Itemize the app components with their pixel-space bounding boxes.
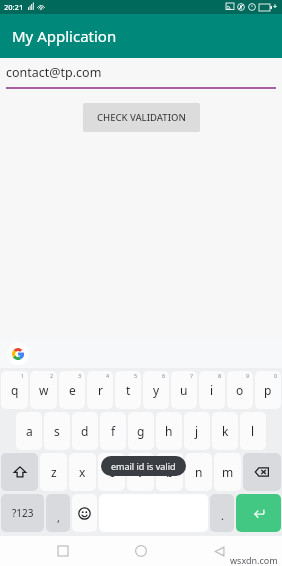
staticText: 3 xyxy=(78,372,82,379)
button[interactable]: b xyxy=(156,453,183,491)
button[interactable]: z xyxy=(40,453,67,491)
staticText: f xyxy=(111,423,116,439)
button[interactable]: v xyxy=(127,453,154,491)
button[interactable]: , xyxy=(46,494,70,532)
button[interactable]: Home xyxy=(126,536,156,566)
button[interactable]: c xyxy=(98,453,125,491)
staticText: g xyxy=(137,423,145,439)
button[interactable]: ?123 xyxy=(1,494,44,532)
staticText: v xyxy=(137,464,144,480)
staticText: h xyxy=(165,423,173,439)
button[interactable]: 6 xyxy=(143,371,169,409)
button[interactable]: x xyxy=(69,453,96,491)
button[interactable]: f xyxy=(100,412,126,450)
button[interactable]: s xyxy=(44,412,70,450)
staticText: t xyxy=(126,382,131,398)
staticText: p xyxy=(264,382,272,398)
button[interactable]: 5 xyxy=(115,371,141,409)
staticText: . xyxy=(221,508,224,523)
button[interactable]: contact@tp.com xyxy=(0,62,282,89)
button[interactable]: n xyxy=(185,453,212,491)
staticText: n xyxy=(195,464,203,480)
staticText: wsxdn.com xyxy=(230,554,278,566)
button[interactable]: Backspace xyxy=(243,453,281,491)
staticText: My Application xyxy=(12,26,117,46)
staticText: b xyxy=(166,464,174,480)
button[interactable]: 7 xyxy=(171,371,197,409)
staticText: 1 xyxy=(21,372,25,379)
button[interactable]: Shift xyxy=(1,453,38,491)
staticText: r xyxy=(98,382,103,398)
button[interactable]: 4 xyxy=(87,371,113,409)
button[interactable]: l xyxy=(240,412,266,450)
button[interactable]: Back xyxy=(204,536,234,566)
button[interactable]: d xyxy=(72,412,98,450)
staticText: 7 xyxy=(190,372,194,379)
button[interactable]: m xyxy=(214,453,241,491)
staticText: 6 xyxy=(162,372,166,379)
staticText: 5 xyxy=(134,372,138,379)
staticText: 20:21 xyxy=(4,2,24,12)
staticText: o xyxy=(236,382,244,398)
staticText: w xyxy=(39,382,49,398)
staticText: u xyxy=(180,382,188,398)
staticText: d xyxy=(81,423,89,439)
button[interactable]: . xyxy=(210,494,234,532)
button[interactable]: 0 xyxy=(255,371,281,409)
staticText: contact@tp.com xyxy=(6,64,102,81)
staticText: l xyxy=(251,423,255,439)
button[interactable]: Emoji xyxy=(72,494,97,532)
staticText: 4 xyxy=(106,372,110,379)
staticText: 9 xyxy=(246,372,250,379)
staticText: 2 xyxy=(50,372,54,379)
staticText: s xyxy=(54,423,60,439)
button[interactable]: 8 xyxy=(199,371,225,409)
staticText: ?123 xyxy=(12,506,34,520)
staticText: a xyxy=(26,423,33,439)
button[interactable]: g xyxy=(128,412,154,450)
button[interactable]: Enter xyxy=(236,494,281,532)
button[interactable]: k xyxy=(212,412,238,450)
staticText: q xyxy=(11,382,19,398)
staticText: + xyxy=(273,2,278,12)
staticText: y xyxy=(153,382,160,398)
staticText: CHECK VALIDATION xyxy=(97,111,186,124)
button[interactable]: 2 xyxy=(30,371,57,409)
staticText: 8 xyxy=(218,372,222,379)
button[interactable]: Google xyxy=(7,343,29,365)
button[interactable]: 1 xyxy=(1,371,28,409)
staticText: c xyxy=(109,464,115,480)
button[interactable]: Recents xyxy=(48,536,78,566)
staticText: x xyxy=(79,464,86,480)
staticText: m xyxy=(222,464,234,480)
button[interactable]: a xyxy=(16,412,42,450)
button[interactable]: j xyxy=(184,412,210,450)
staticText: i xyxy=(210,382,214,398)
staticText: , xyxy=(57,510,60,525)
staticText: email id is valid xyxy=(111,460,176,472)
staticText: j xyxy=(195,423,199,439)
button[interactable]: 9 xyxy=(227,371,253,409)
staticText: z xyxy=(51,464,57,480)
staticText: k xyxy=(222,423,229,439)
staticText: 0 xyxy=(274,372,278,379)
staticText: e xyxy=(69,382,76,398)
button[interactable]: CHECK VALIDATION xyxy=(83,103,200,132)
button[interactable]: h xyxy=(156,412,182,450)
button[interactable]: 3 xyxy=(59,371,85,409)
